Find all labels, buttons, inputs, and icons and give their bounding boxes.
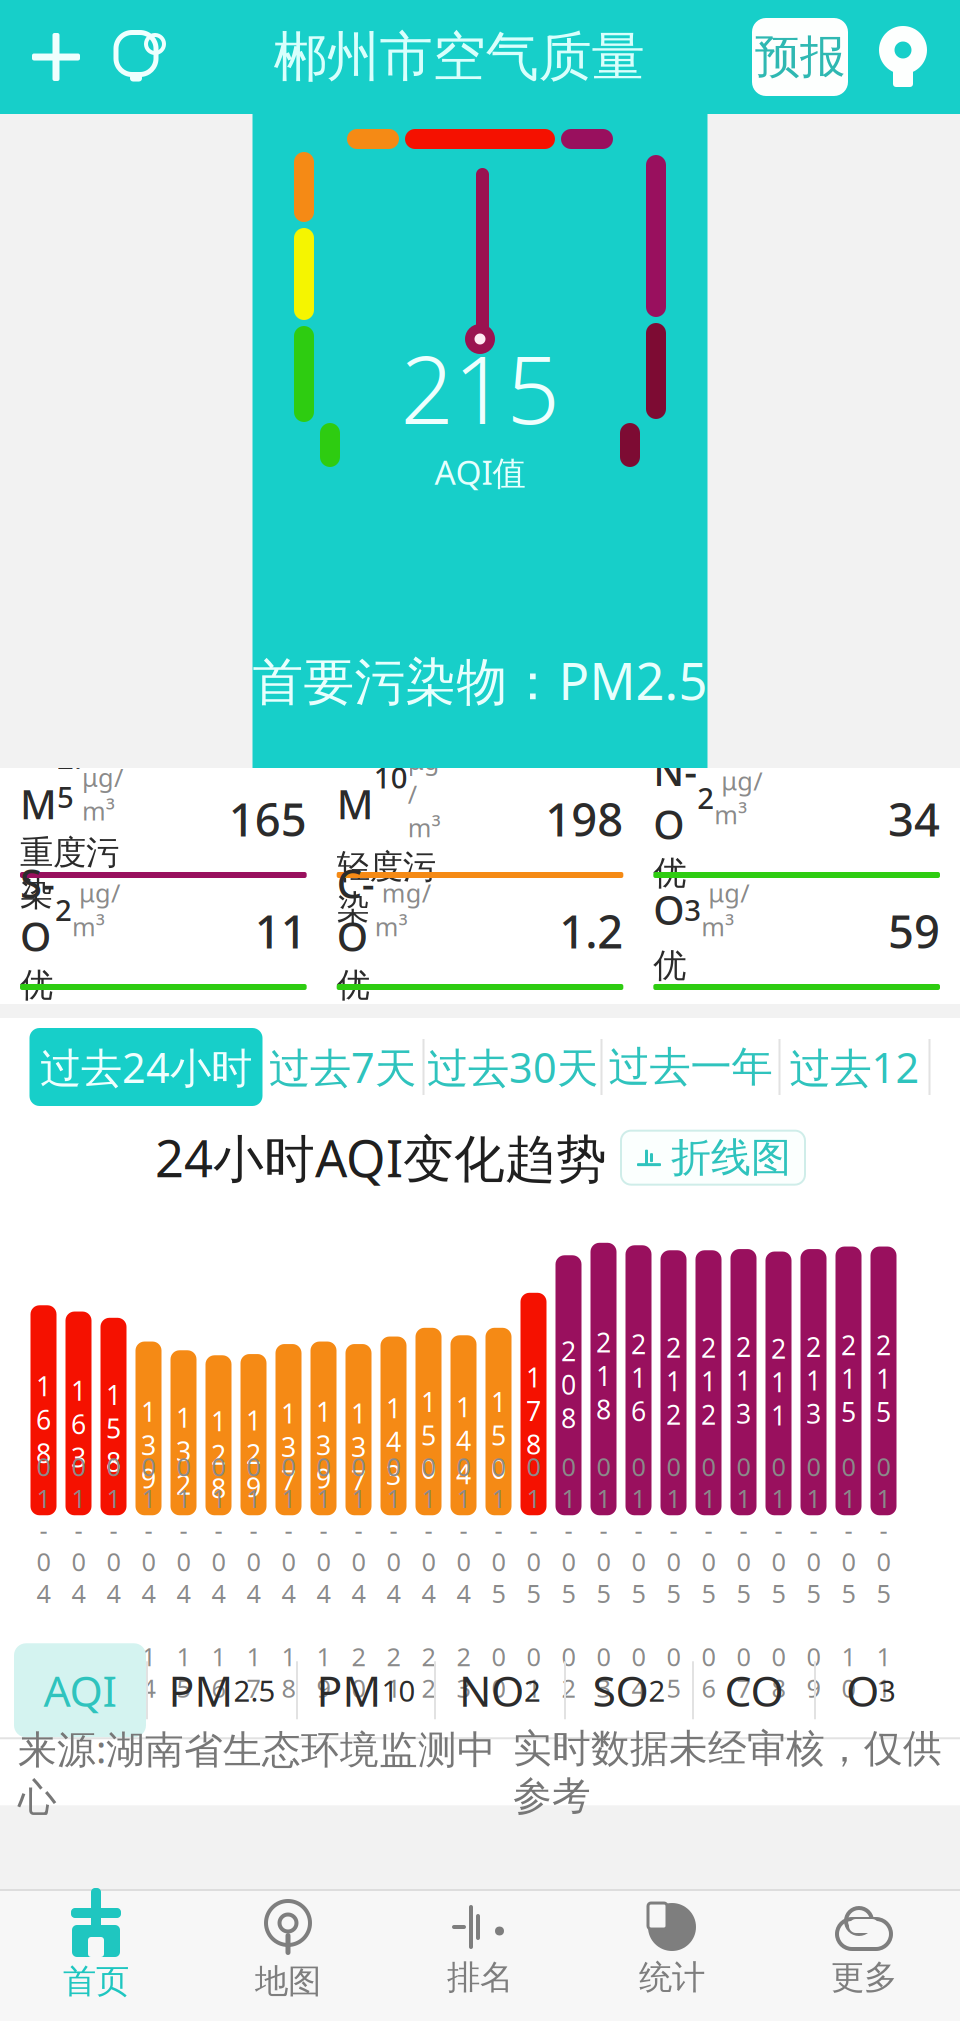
staticText: 2: [421, 1671, 435, 1705]
staticText: 1: [71, 1373, 86, 1408]
button[interactable]: CO: [692, 1643, 814, 1737]
staticText: 6: [631, 1393, 646, 1428]
staticText: 1: [176, 1400, 191, 1435]
button[interactable]: 预报: [752, 18, 848, 96]
staticText: -: [739, 1513, 747, 1547]
button[interactable]: 过去30天: [424, 1028, 602, 1106]
staticText: 4: [106, 1576, 120, 1610]
button[interactable]: 添加城市: [26, 27, 86, 87]
button[interactable]: 首页: [0, 1891, 192, 2021]
button[interactable]: 过去12: [780, 1028, 930, 1106]
staticText: 3: [736, 1396, 751, 1431]
button[interactable]: SO: [564, 1643, 692, 1737]
button[interactable]: PM: [146, 1643, 296, 1737]
staticText: 1: [526, 1671, 540, 1705]
staticText: 5: [841, 1394, 856, 1429]
button[interactable]: 定位: [872, 24, 934, 90]
staticText: 8: [211, 1470, 226, 1505]
staticText: 0: [596, 1545, 610, 1578]
button[interactable]: O: [814, 1643, 926, 1737]
staticText: 3: [806, 1396, 821, 1431]
button[interactable]: NO: [434, 1643, 564, 1737]
button[interactable]: 地图: [192, 1891, 384, 2021]
button[interactable]: NO: [647, 782, 946, 878]
staticText: 0: [526, 1545, 540, 1578]
staticText: -: [179, 1513, 187, 1547]
staticText: 地图: [255, 1961, 321, 2002]
staticText: 0: [141, 1450, 155, 1483]
button[interactable]: 统计: [576, 1891, 768, 2021]
staticText: 0: [491, 1545, 505, 1578]
staticText: 0: [666, 1450, 680, 1483]
staticText: -: [564, 1513, 572, 1547]
staticText: 0: [701, 1640, 715, 1673]
button[interactable]: PM: [331, 782, 629, 878]
staticText: 4: [351, 1576, 365, 1610]
staticText: 2.5: [233, 1671, 275, 1710]
staticText: 1: [631, 1360, 646, 1395]
staticText: 2: [876, 1327, 891, 1363]
staticText: 0: [71, 1545, 85, 1578]
staticText: 0: [351, 1671, 365, 1705]
staticText: 4: [421, 1576, 435, 1610]
staticText: 0: [631, 1450, 645, 1483]
button[interactable]: 过去一年: [602, 1028, 780, 1106]
staticText: μg/m³: [701, 876, 749, 943]
button[interactable]: 通知提醒: [106, 27, 166, 87]
staticText: 0: [421, 1545, 435, 1578]
button[interactable]: CO: [331, 894, 629, 990]
staticText: 0: [666, 1640, 680, 1673]
button[interactable]: 折线图: [621, 1131, 805, 1185]
button[interactable]: 更多: [768, 1891, 960, 2021]
staticText: 排名: [447, 1957, 513, 1998]
staticText: 1: [36, 1640, 50, 1673]
button[interactable]: 排名: [384, 1891, 576, 2021]
staticText: 24小时AQI变化趋势: [155, 1124, 607, 1191]
staticText: -: [879, 1513, 887, 1547]
staticText: 2: [55, 890, 72, 929]
staticText: 1: [596, 1358, 611, 1393]
staticText: 2: [561, 1333, 576, 1369]
button[interactable]: PM: [14, 782, 313, 878]
staticText: 0: [736, 1450, 750, 1483]
staticText: -: [284, 1513, 292, 1547]
staticText: 1: [876, 1481, 890, 1515]
staticText: 0: [526, 1640, 540, 1673]
staticText: O: [846, 1662, 879, 1719]
staticText: 4: [456, 1456, 471, 1491]
staticText: 2: [561, 1671, 575, 1705]
staticText: 0: [561, 1450, 575, 1483]
staticText: 1: [316, 1640, 330, 1673]
staticText: 2: [71, 1671, 85, 1705]
staticText: 0: [841, 1450, 855, 1483]
staticText: 5: [491, 1576, 505, 1610]
staticText: 4: [456, 1423, 471, 1458]
staticText: 2: [841, 1327, 856, 1363]
staticText: 0: [561, 1640, 575, 1673]
staticText: 5: [771, 1576, 785, 1610]
staticText: 1: [176, 1640, 190, 1673]
staticText: 1: [421, 1384, 436, 1419]
button[interactable]: PM: [296, 1643, 434, 1737]
button[interactable]: AQI: [14, 1643, 146, 1737]
button[interactable]: SO: [14, 894, 313, 990]
staticText: 4: [386, 1576, 400, 1610]
staticText: 5: [561, 1576, 575, 1610]
staticText: 预报: [755, 29, 845, 85]
button[interactable]: O: [647, 894, 946, 990]
staticText: 3: [684, 890, 701, 929]
staticText: 实时数据未经审核，仅供参考: [513, 1725, 942, 1820]
staticText: 8: [106, 1444, 121, 1479]
staticText: 1: [246, 1640, 260, 1673]
staticText: 0: [771, 1640, 785, 1673]
staticText: 8: [771, 1671, 785, 1705]
button[interactable]: 过去24小时: [29, 1028, 262, 1106]
staticText: 1: [421, 1481, 435, 1515]
staticText: 0: [246, 1545, 260, 1578]
button[interactable]: 过去7天: [262, 1028, 424, 1106]
staticText: 5: [701, 1576, 715, 1610]
staticText: 1: [701, 1363, 716, 1399]
staticText: 1: [141, 1394, 156, 1429]
